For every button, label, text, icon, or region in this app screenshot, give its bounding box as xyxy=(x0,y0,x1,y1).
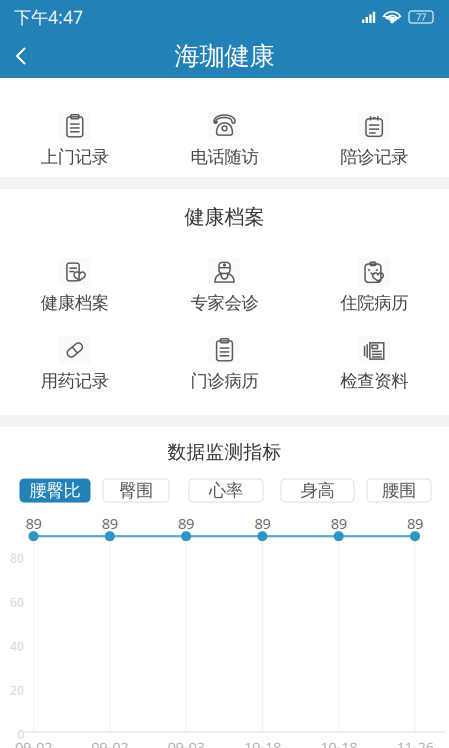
staticText: 门诊病历 xyxy=(190,370,258,392)
button[interactable]: 上门记录 xyxy=(0,112,150,165)
staticText: 心率 xyxy=(209,480,243,501)
staticText: 数据监测指标 xyxy=(167,440,281,463)
staticText: 09-02 xyxy=(91,737,128,748)
button[interactable]: 检查资料 xyxy=(299,336,449,389)
staticText: 腰臀比 xyxy=(29,480,80,501)
staticText: 10-18 xyxy=(244,737,281,748)
staticText: 腰围 xyxy=(382,480,416,501)
staticText: 80 xyxy=(10,550,24,566)
staticText: 专家会诊 xyxy=(190,292,258,314)
staticText: 11-26 xyxy=(396,737,433,748)
staticText: 20 xyxy=(10,682,24,698)
staticText: 40 xyxy=(10,638,24,654)
staticText: 09-02 xyxy=(15,737,52,748)
staticText: 10-18 xyxy=(320,737,357,748)
staticText: 09-03 xyxy=(168,737,205,748)
staticText: 89 xyxy=(407,513,423,533)
button[interactable]: 腰臀比 xyxy=(20,479,90,502)
button[interactable]: 专家会诊 xyxy=(150,258,299,311)
staticText: 89 xyxy=(102,513,118,533)
staticText: 健康档案 xyxy=(41,292,109,314)
staticText: 臀围 xyxy=(119,480,153,501)
staticText: 身高 xyxy=(300,480,334,501)
staticText: 89 xyxy=(254,513,270,533)
staticText: 60 xyxy=(10,594,24,610)
button[interactable]: 健康档案 xyxy=(0,258,150,311)
staticText: 89 xyxy=(331,513,347,533)
staticText: 海珈健康 xyxy=(174,40,274,71)
staticText: 陪诊记录 xyxy=(340,146,408,168)
staticText: 0 xyxy=(17,726,24,742)
staticText: 住院病历 xyxy=(340,292,408,314)
staticText: 健康档案 xyxy=(184,205,264,229)
button[interactable]: 门诊病历 xyxy=(150,336,299,389)
button[interactable]: 陪诊记录 xyxy=(299,112,449,165)
button[interactable]: 电话随访 xyxy=(150,112,299,165)
staticText: 用药记录 xyxy=(41,370,109,392)
staticText: 89 xyxy=(25,513,41,533)
button[interactable]: Back xyxy=(0,36,42,76)
button[interactable]: 臀围 xyxy=(103,479,169,502)
button[interactable]: 心率 xyxy=(189,479,263,502)
staticText: 77 xyxy=(416,11,426,23)
button[interactable]: 住院病历 xyxy=(299,258,449,311)
button[interactable]: 用药记录 xyxy=(0,336,150,389)
staticText: 上门记录 xyxy=(41,146,109,168)
button[interactable]: 身高 xyxy=(281,479,354,502)
staticText: 电话随访 xyxy=(190,146,258,168)
staticText: 下午4:47 xyxy=(14,5,83,28)
button[interactable]: 腰围 xyxy=(367,479,431,502)
staticText: 89 xyxy=(178,513,194,533)
staticText: 检查资料 xyxy=(340,370,408,392)
